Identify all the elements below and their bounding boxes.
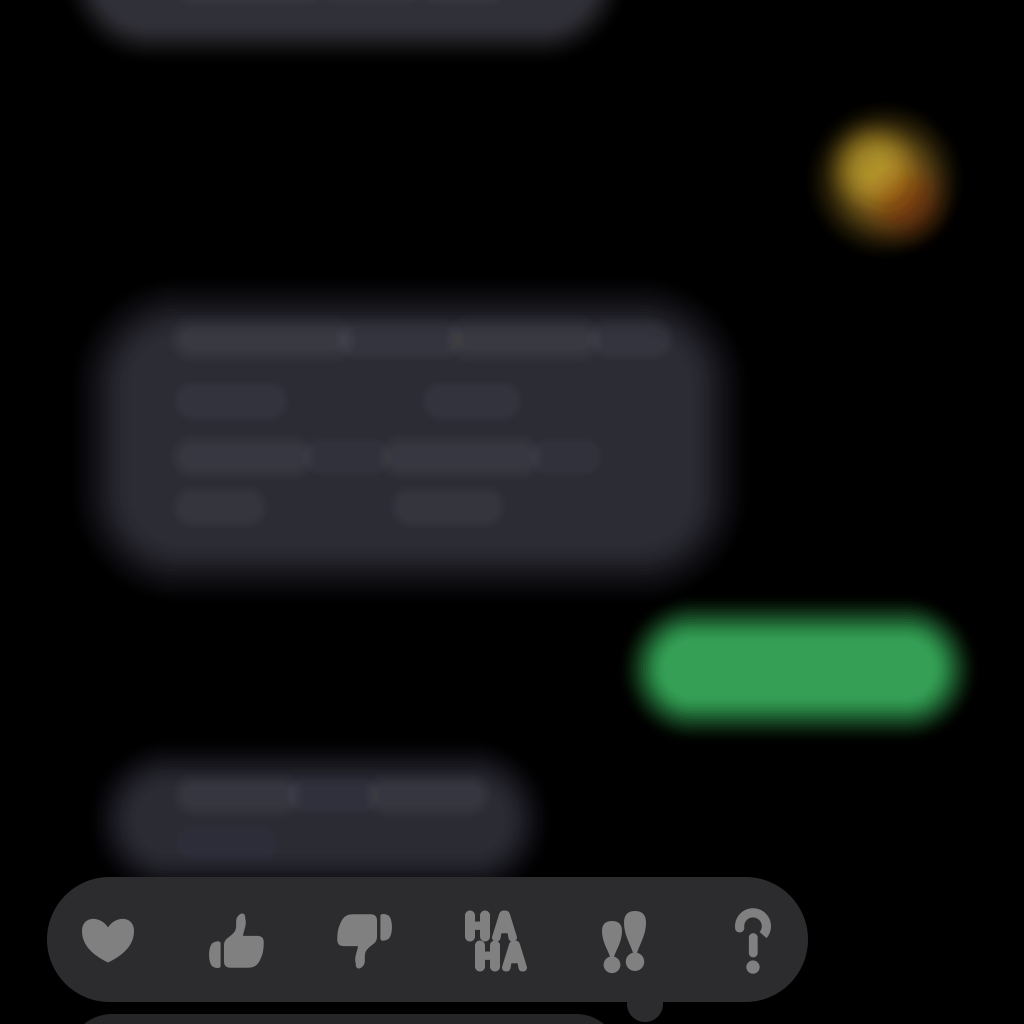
button[interactable]: Thumbs down [306,878,424,1003]
button[interactable]: Thumbs up [177,878,295,1003]
button[interactable]: Exclamation [565,878,683,1003]
button[interactable]: Love [49,877,167,1002]
button[interactable]: Question mark [694,880,812,1005]
button[interactable]: Haha [437,878,555,1003]
